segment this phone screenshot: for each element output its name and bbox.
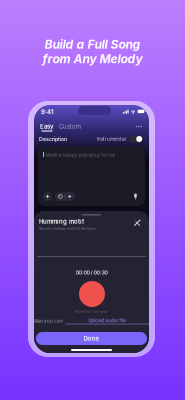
button[interactable]: Upload audio file xyxy=(65,318,149,324)
staticText: 9:41 xyxy=(41,108,54,116)
staticText: Humming motif xyxy=(39,218,84,225)
staticText: Done xyxy=(83,335,99,342)
staticText: Minimum 5 seconds xyxy=(75,309,108,313)
button[interactable]: Close xyxy=(131,217,143,229)
button[interactable]: More options xyxy=(133,122,145,131)
staticText: 00:00 / 00:30 xyxy=(75,269,107,276)
button[interactable]: Start recording xyxy=(79,281,105,307)
staticText: Custom xyxy=(59,123,81,130)
staticText: Upload audio file xyxy=(88,318,126,323)
staticText: Also you can xyxy=(34,318,63,324)
button[interactable]: Custom xyxy=(58,122,82,131)
staticText: from Any Melody xyxy=(42,51,142,66)
button[interactable]: Instrumental toggle xyxy=(129,135,143,143)
button[interactable]: Record voice xyxy=(132,192,138,200)
staticText: Record a melody motif for the lyrics xyxy=(39,226,96,230)
button[interactable]: Easy xyxy=(38,122,56,131)
staticText: Instrumental xyxy=(97,136,126,142)
staticText: Easy xyxy=(40,123,54,130)
staticText: Make a happy pop song for me xyxy=(45,152,115,158)
button[interactable]: Style options xyxy=(55,192,75,201)
button[interactable]: Done xyxy=(36,332,147,345)
staticText: Description xyxy=(39,136,67,142)
button[interactable]: Add attachment xyxy=(43,192,52,201)
staticText: Build a Full Song xyxy=(44,37,140,51)
